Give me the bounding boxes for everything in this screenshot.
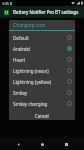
button[interactable]: Smiley — [9, 87, 75, 98]
button[interactable]: Lightning (yellow) — [9, 76, 75, 87]
staticText: Charging icon — [13, 22, 46, 29]
button[interactable]: Default — [9, 32, 75, 43]
button[interactable]: Android — [9, 43, 75, 54]
staticText: 3:05 — [2, 1, 10, 6]
button[interactable]: Heart — [9, 54, 75, 65]
staticText: Smiley charging — [13, 101, 67, 107]
button[interactable]: Lightning (neon) — [9, 65, 75, 76]
staticText: Lightning (yellow) — [13, 79, 67, 85]
staticText: Lightning (neon) — [13, 68, 67, 74]
staticText: Android — [13, 46, 67, 52]
button[interactable]: Smiley charging — [9, 98, 75, 109]
staticText: Smiley — [13, 90, 67, 96]
staticText: Cancel — [35, 113, 49, 118]
staticText: Battery Notifier Pro BT settings — [13, 9, 79, 15]
button[interactable]: Cancel — [29, 111, 55, 120]
button[interactable]: Home — [36, 138, 48, 150]
staticText: Default — [13, 35, 67, 41]
button[interactable]: Recent apps — [60, 138, 72, 150]
button[interactable]: Back — [12, 138, 24, 150]
staticText: Heart — [13, 57, 67, 63]
other: App icon — [3, 9, 10, 16]
